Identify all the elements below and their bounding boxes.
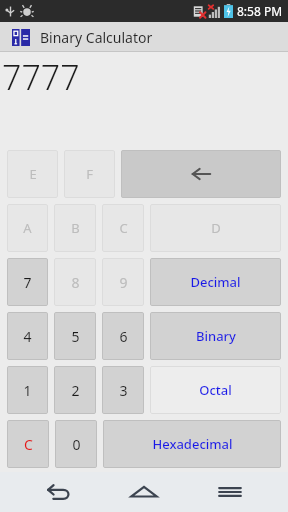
staticText: A <box>23 219 32 237</box>
button[interactable]: C <box>7 420 49 468</box>
button[interactable]: A <box>7 204 48 252</box>
staticText: 7 <box>23 273 32 292</box>
button[interactable]: Hexadecimal <box>103 420 281 468</box>
staticText: 0 <box>72 435 81 454</box>
staticText: 5 <box>71 327 80 346</box>
staticText: C <box>24 435 33 454</box>
button[interactable]: E <box>7 150 58 198</box>
staticText: C <box>119 219 128 237</box>
button[interactable]: 9 <box>102 258 144 306</box>
staticText: 4 <box>23 327 32 346</box>
staticText: 3 <box>119 381 128 400</box>
button[interactable]: 4 <box>7 312 48 360</box>
staticText: F <box>86 165 93 183</box>
button[interactable]: F <box>64 150 115 198</box>
staticText: 8 <box>71 273 80 292</box>
staticText: 9 <box>119 273 128 292</box>
staticText: Binary Calculator <box>40 28 153 47</box>
button[interactable]: C <box>102 204 144 252</box>
button[interactable]: 2 <box>54 366 96 414</box>
staticText: 2 <box>71 381 80 400</box>
button[interactable]: B <box>54 204 96 252</box>
staticText: Octal <box>199 381 232 399</box>
button[interactable]: Octal <box>150 366 281 414</box>
button[interactable]: 6 <box>102 312 144 360</box>
button[interactable]: 5 <box>54 312 96 360</box>
button[interactable]: Back <box>30 472 86 512</box>
staticText: B <box>71 219 80 237</box>
button[interactable]: D <box>150 204 281 252</box>
staticText: 8:58 PM <box>237 3 283 19</box>
button[interactable]: 7 <box>7 258 48 306</box>
button[interactable]: Decimal <box>150 258 281 306</box>
button[interactable]: Recent apps <box>202 472 258 512</box>
button[interactable]: 0 <box>55 420 97 468</box>
staticText: 7777 <box>2 54 80 100</box>
staticText: 1 <box>23 381 32 400</box>
button[interactable]: 3 <box>102 366 144 414</box>
staticText: 6 <box>119 327 128 346</box>
button[interactable]: 8 <box>54 258 96 306</box>
staticText: Binary <box>196 327 236 345</box>
staticText: D <box>211 219 221 237</box>
staticText: Decimal <box>190 273 241 291</box>
staticText: E <box>29 165 37 183</box>
button[interactable]: Home <box>116 472 172 512</box>
button[interactable]: Backspace <box>121 150 281 198</box>
staticText: Hexadecimal <box>152 435 233 453</box>
button[interactable]: 1 <box>7 366 48 414</box>
button[interactable]: Binary <box>150 312 281 360</box>
